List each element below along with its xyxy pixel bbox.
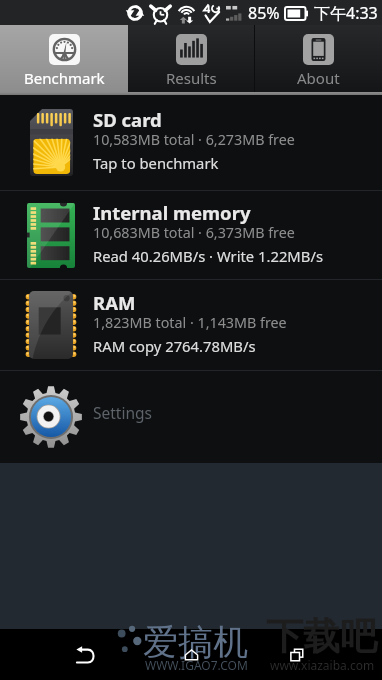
staticText: Benchmark bbox=[24, 68, 105, 88]
staticText: WWW.IGAO7.COM bbox=[145, 657, 248, 673]
staticText: RAM bbox=[93, 290, 136, 315]
staticText: Read 40.26MB/s · Write 1.22MB/s bbox=[93, 246, 323, 266]
staticText: www.xiazaiba.com bbox=[270, 657, 375, 673]
staticText: 10,683MB total · 6,373MB free bbox=[93, 223, 295, 242]
button[interactable]: Settings bbox=[0, 371, 382, 463]
staticText: 1,823MB total · 1,143MB free bbox=[93, 313, 287, 332]
staticText: Settings bbox=[93, 402, 152, 423]
staticText: Internal memory bbox=[93, 200, 251, 225]
staticText: SD card bbox=[93, 107, 162, 132]
button[interactable]: SD card bbox=[0, 95, 382, 190]
button[interactable]: Benchmark bbox=[0, 25, 128, 92]
button[interactable]: Back bbox=[49, 629, 121, 680]
button[interactable]: Results bbox=[128, 25, 255, 92]
button[interactable]: Home bbox=[155, 629, 227, 680]
staticText: Results bbox=[166, 68, 217, 88]
staticText: 下午4:33 bbox=[314, 2, 378, 24]
staticText: RAM copy 2764.78MB/s bbox=[93, 336, 256, 356]
staticText: About bbox=[297, 68, 340, 88]
button[interactable]: Internal memory bbox=[0, 191, 382, 279]
staticText: Tap to benchmark bbox=[93, 153, 219, 173]
button[interactable]: About bbox=[255, 25, 382, 92]
staticText: 爱搞机 bbox=[143, 620, 248, 664]
staticText: 10,583MB total · 6,273MB free bbox=[93, 130, 295, 149]
staticText: 下载吧 bbox=[266, 613, 377, 660]
button[interactable]: Recent apps bbox=[261, 629, 333, 680]
button[interactable]: RAM bbox=[0, 280, 382, 370]
staticText: 85% bbox=[248, 2, 280, 24]
